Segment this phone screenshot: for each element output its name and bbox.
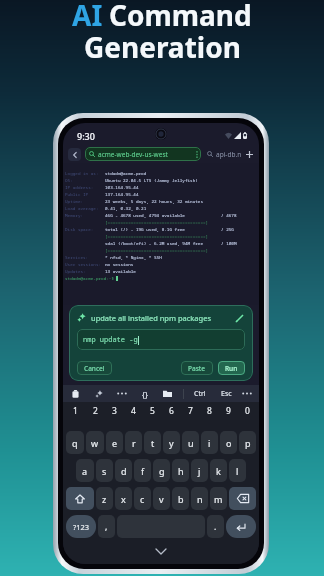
button[interactable]: api-db.n xyxy=(207,147,243,161)
staticText: * nfsd, * Nginx, * SSH xyxy=(105,254,162,260)
staticText: . xyxy=(214,521,217,533)
staticText: 103.164.95.44 xyxy=(105,184,139,190)
button[interactable]: Clipboard xyxy=(69,387,82,400)
button[interactable]: h xyxy=(172,459,189,482)
button[interactable]: Overflow xyxy=(240,387,253,400)
staticText: Uptime: xyxy=(65,198,84,204)
staticText: total (/) - 19G used, 8.1G free / 25G xyxy=(105,226,234,232)
staticText: x xyxy=(121,493,126,505)
button[interactable]: Esc xyxy=(219,387,234,401)
button[interactable]: l xyxy=(229,459,246,482)
button[interactable]: i xyxy=(201,431,218,454)
staticText: 6 xyxy=(169,405,174,417)
button[interactable]: Run xyxy=(218,361,245,375)
button[interactable]: 1 xyxy=(66,402,84,420)
button[interactable]: b xyxy=(172,487,189,510)
button[interactable]: z xyxy=(96,487,113,510)
staticText: Generation xyxy=(84,28,241,66)
button[interactable]: 6 xyxy=(163,402,180,420)
staticText: o xyxy=(226,437,232,449)
button[interactable]: 4 xyxy=(125,402,142,420)
staticText: 1 xyxy=(73,405,78,417)
button[interactable]: n xyxy=(191,487,208,510)
staticText: Services: xyxy=(65,254,89,260)
button[interactable]: v xyxy=(153,487,170,510)
button[interactable]: r xyxy=(125,431,142,454)
button[interactable]: Cancel xyxy=(77,361,112,375)
button[interactable]: Paste xyxy=(181,361,213,375)
button[interactable]: w xyxy=(86,431,104,454)
button[interactable]: c xyxy=(134,487,151,510)
staticText: , xyxy=(105,521,108,533)
button[interactable]: Files xyxy=(161,387,174,400)
button[interactable]: Enter xyxy=(226,515,256,538)
staticText: Memory: xyxy=(65,212,84,218)
button[interactable]: Back xyxy=(68,148,81,161)
button[interactable]: Shift xyxy=(66,487,94,510)
button[interactable]: a xyxy=(76,459,94,482)
button[interactable]: t xyxy=(144,431,161,454)
staticText: [======================================] xyxy=(105,233,209,239)
button[interactable]: acme-web-dev-us-west xyxy=(85,147,201,161)
staticText: Disk space: xyxy=(65,226,94,232)
staticText: z xyxy=(102,493,107,505)
staticText: y xyxy=(169,437,174,449)
button[interactable]: g xyxy=(153,459,170,482)
button[interactable]: . xyxy=(207,515,224,538)
button[interactable]: Edit xyxy=(233,312,245,324)
button[interactable]: Code xyxy=(138,387,151,400)
staticText: sda1 (/boot/efi) - 6.2M used, 94M free /… xyxy=(105,240,237,246)
button[interactable]: 8 xyxy=(201,402,218,420)
button[interactable]: o xyxy=(220,431,237,454)
staticText: 2 xyxy=(93,405,98,417)
staticText: e xyxy=(112,437,118,449)
button[interactable]: f xyxy=(134,459,151,482)
staticText: 23 weeks, 5 days, 22 hours, 32 minutes xyxy=(105,198,203,204)
staticText: c xyxy=(140,493,145,505)
button[interactable]: q xyxy=(66,431,84,454)
button[interactable]: AI assist xyxy=(92,387,105,400)
button[interactable]: j xyxy=(191,459,208,482)
staticText: g xyxy=(159,465,165,477)
staticText: k xyxy=(216,465,221,477)
button[interactable]: p xyxy=(239,431,256,454)
staticText: [======================================] xyxy=(105,219,209,225)
button[interactable]: y xyxy=(163,431,180,454)
button[interactable]: New tab xyxy=(243,148,255,160)
button[interactable]: 3 xyxy=(106,402,123,420)
staticText: 9 xyxy=(226,405,231,417)
button[interactable]: Backspace xyxy=(229,487,256,510)
button[interactable]: ?123 xyxy=(66,515,96,538)
staticText: no sessions xyxy=(105,261,134,267)
staticText: m xyxy=(214,493,223,505)
staticText: q xyxy=(72,437,78,449)
button[interactable]: 9 xyxy=(220,402,237,420)
button[interactable]: s xyxy=(96,459,113,482)
button[interactable]: More xyxy=(115,387,128,400)
button[interactable]: 0 xyxy=(239,402,256,420)
staticText: 0 xyxy=(245,405,250,417)
button[interactable]: , xyxy=(98,515,115,538)
staticText: 13 available xyxy=(105,268,136,274)
button[interactable]: Ctrl xyxy=(192,387,208,401)
button[interactable]: 5 xyxy=(144,402,161,420)
staticText: u xyxy=(188,437,194,449)
button[interactable]: d xyxy=(115,459,132,482)
staticText: AI xyxy=(72,0,103,34)
button[interactable]: k xyxy=(210,459,227,482)
button[interactable]: e xyxy=(106,431,123,454)
button[interactable]: 7 xyxy=(182,402,199,420)
staticText: ?123 xyxy=(73,522,90,532)
staticText: a xyxy=(82,465,88,477)
button[interactable]: m xyxy=(210,487,227,510)
button[interactable]: u xyxy=(182,431,199,454)
button[interactable]: x xyxy=(115,487,132,510)
staticText: 137.164.95.44 xyxy=(105,191,139,197)
staticText: OS: xyxy=(65,177,73,183)
staticText: Public IP address: xyxy=(65,191,105,197)
staticText: 3 xyxy=(112,405,117,417)
staticText: Run xyxy=(225,364,238,373)
staticText: {} xyxy=(142,389,148,399)
button[interactable]: 2 xyxy=(86,402,104,420)
